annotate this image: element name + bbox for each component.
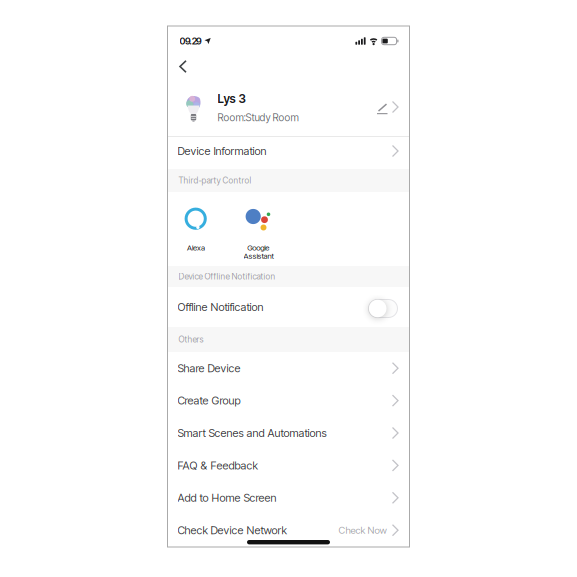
button[interactable]: Edit device name [167, 78, 409, 136]
staticText: Offline Notification [177, 300, 263, 314]
button[interactable]: FAQ & Feedback [167, 449, 409, 482]
button[interactable]: Add to Home Screen [167, 482, 409, 514]
staticText: Lys 3 [217, 91, 245, 106]
staticText: Assistant [243, 251, 273, 261]
button[interactable]: Device Information [167, 137, 409, 169]
button[interactable]: Create Group [167, 384, 409, 417]
staticText: Add to Home Screen [177, 491, 276, 504]
staticText: Create Group [177, 394, 240, 407]
staticText: Device Information [177, 144, 266, 158]
staticText: Google [247, 243, 269, 252]
staticText: Room:Study Room [217, 111, 298, 124]
button[interactable]: Back [175, 56, 191, 77]
button[interactable]: Check Device Network [167, 514, 409, 546]
staticText: 09.29 [179, 35, 202, 47]
staticText: Others [178, 334, 203, 345]
button[interactable]: Offline Notification [167, 287, 409, 327]
staticText: Check Device Network [177, 523, 286, 537]
staticText: Device Offline Notification [178, 271, 275, 282]
staticText: Alexa [187, 243, 205, 252]
staticText: Third-party Control [178, 175, 251, 186]
button[interactable]: Google Assistant [226, 192, 290, 266]
staticText: Share Device [177, 361, 240, 375]
staticText: Smart Scenes and Automations [177, 426, 326, 440]
staticText: Check Now [338, 524, 386, 536]
button[interactable]: Share Device [167, 352, 409, 384]
staticText: FAQ & Feedback [177, 459, 257, 472]
button[interactable]: Smart Scenes and Automations [167, 417, 409, 449]
button[interactable]: Alexa [168, 192, 224, 266]
